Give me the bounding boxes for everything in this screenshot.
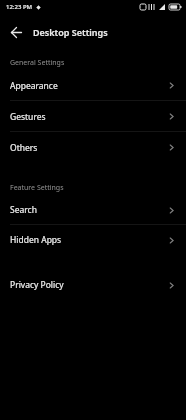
button[interactable]: Search bbox=[0, 195, 186, 225]
staticText: General Settings bbox=[10, 58, 65, 68]
staticText: Gestures bbox=[10, 111, 46, 123]
button[interactable]: Appearance bbox=[0, 70, 186, 101]
button[interactable]: Others bbox=[0, 132, 186, 163]
staticText: Hidden Apps bbox=[10, 234, 62, 246]
staticText: Privacy Policy bbox=[10, 279, 64, 291]
button[interactable] bbox=[0, 16, 32, 48]
staticText: 12:23 PM bbox=[6, 3, 33, 11]
staticText: Appearance bbox=[10, 80, 58, 92]
staticText: Desktop Settings bbox=[33, 26, 108, 38]
button[interactable]: Hidden Apps bbox=[0, 225, 186, 255]
staticText: Feature Settings bbox=[10, 183, 64, 193]
staticText: Others bbox=[10, 142, 38, 154]
staticText: Search bbox=[10, 204, 37, 216]
button[interactable]: Privacy Policy bbox=[0, 270, 186, 300]
button[interactable]: Gestures bbox=[0, 101, 186, 132]
